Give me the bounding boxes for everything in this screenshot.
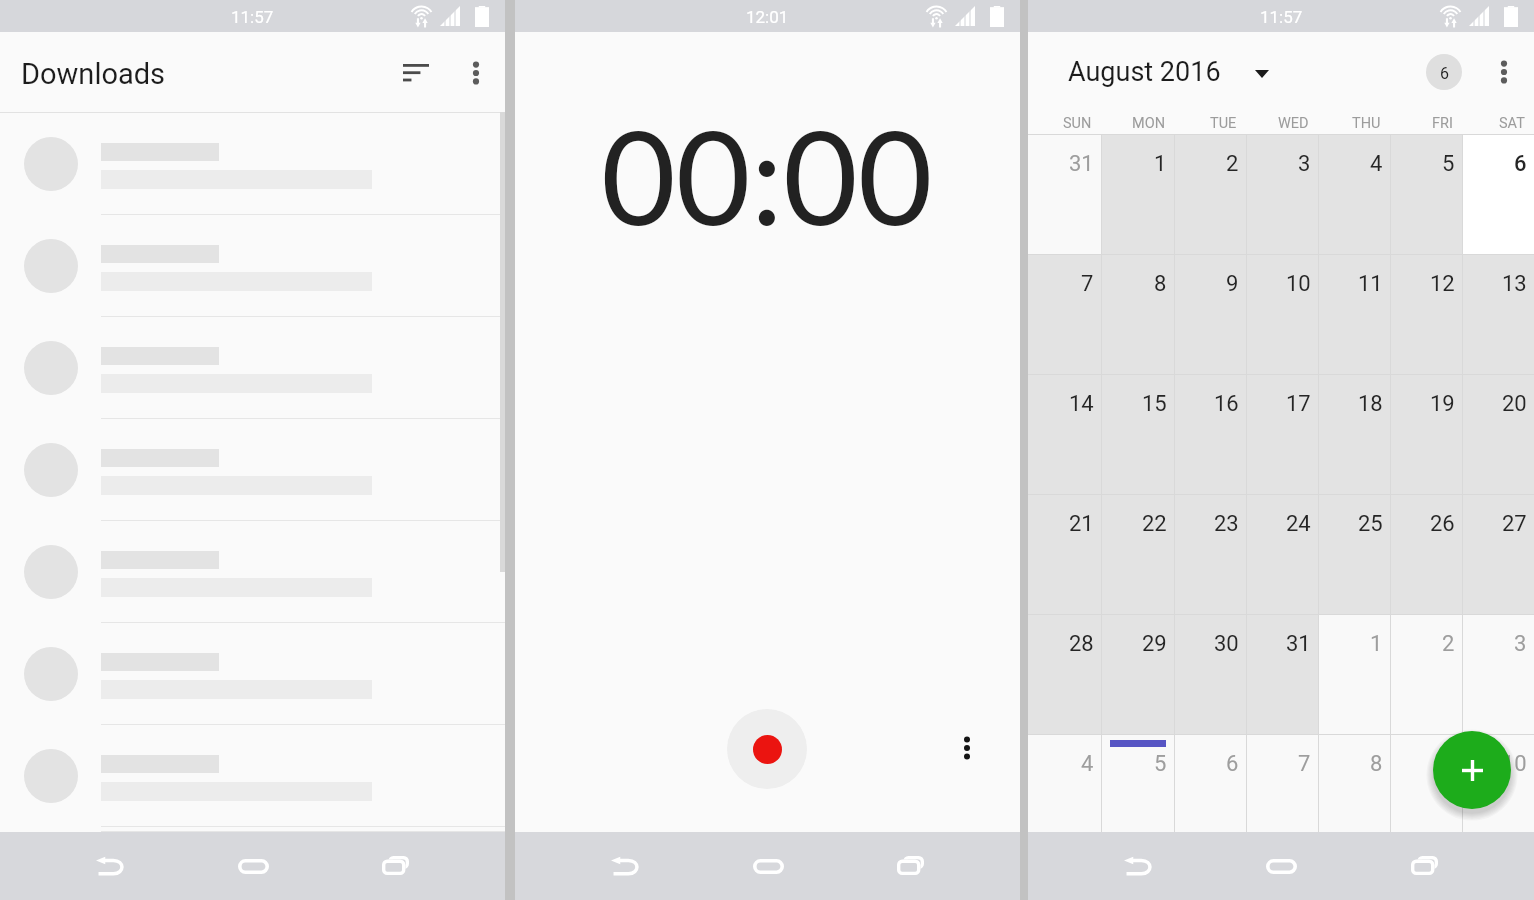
button[interactable]: More options	[943, 724, 991, 772]
button[interactable]	[0, 827, 505, 832]
button[interactable]: Back	[1105, 833, 1171, 899]
button[interactable]: Sort	[392, 49, 440, 97]
staticText: 29	[1142, 631, 1167, 657]
button[interactable]: 5	[1101, 734, 1174, 832]
staticText: 3	[1298, 151, 1311, 177]
button[interactable]: Recent apps	[362, 833, 428, 899]
button[interactable]: 20	[1462, 374, 1534, 494]
staticText: Downloads	[21, 57, 166, 91]
staticText: 10	[1502, 751, 1527, 777]
button[interactable]: 17	[1246, 374, 1318, 494]
button[interactable]: 7	[1246, 734, 1318, 832]
staticText: 31	[1069, 151, 1094, 177]
button[interactable]: 22	[1101, 494, 1174, 614]
button[interactable]	[0, 521, 505, 623]
staticText: 00:00	[601, 98, 933, 253]
button[interactable]: 2	[1174, 134, 1246, 254]
button[interactable]: 18	[1318, 374, 1390, 494]
staticText: 7	[1298, 751, 1311, 777]
button[interactable]	[0, 317, 505, 419]
staticText: 3	[1514, 631, 1527, 657]
button[interactable]: 3	[1246, 134, 1318, 254]
button[interactable]: More options	[1480, 48, 1528, 96]
staticText: 10	[1286, 271, 1311, 297]
staticText: 1	[1370, 631, 1383, 657]
staticText: 6	[1440, 64, 1449, 83]
button[interactable]: 12	[1390, 254, 1462, 374]
button[interactable]: 26	[1390, 494, 1462, 614]
button[interactable]: Create event	[1433, 731, 1511, 809]
button[interactable]: 28	[1028, 614, 1101, 734]
button[interactable]	[0, 419, 505, 521]
staticText: 13	[1502, 271, 1527, 297]
button[interactable]: 19	[1390, 374, 1462, 494]
button[interactable]: Home	[1248, 833, 1314, 899]
button[interactable]: 2	[1390, 614, 1462, 734]
button[interactable]: 10	[1246, 254, 1318, 374]
button[interactable]: 6	[1174, 734, 1246, 832]
button[interactable]: 15	[1101, 374, 1174, 494]
button[interactable]: 4	[1028, 734, 1101, 832]
button[interactable]: Record	[727, 709, 807, 789]
staticText: 11:57	[1260, 7, 1303, 27]
staticText: 30	[1214, 631, 1239, 657]
button[interactable]: 29	[1101, 614, 1174, 734]
button[interactable]: 8	[1101, 254, 1174, 374]
button[interactable]: 11	[1318, 254, 1390, 374]
staticText: 19	[1430, 391, 1455, 417]
button[interactable]: 5	[1390, 134, 1462, 254]
button[interactable]: 25	[1318, 494, 1390, 614]
button[interactable]: 16	[1174, 374, 1246, 494]
button[interactable]: Back	[77, 833, 143, 899]
staticText: 18	[1358, 391, 1383, 417]
button[interactable]	[0, 623, 505, 725]
staticText: 9	[1226, 271, 1239, 297]
button[interactable]: 1	[1318, 614, 1390, 734]
button[interactable]: August 2016	[1056, 48, 1281, 96]
button[interactable]: 30	[1174, 614, 1246, 734]
staticText: 7	[1081, 271, 1094, 297]
button[interactable]: 13	[1462, 254, 1534, 374]
staticText: 12:01	[746, 7, 789, 27]
staticText: SAT	[1499, 115, 1525, 132]
staticText: 1	[1154, 151, 1167, 177]
button[interactable]: Recent apps	[877, 833, 943, 899]
staticText: 4	[1081, 751, 1094, 777]
button[interactable]: 27	[1462, 494, 1534, 614]
button[interactable]: Recent apps	[1391, 833, 1457, 899]
staticText: 15	[1142, 391, 1167, 417]
button[interactable]: Home	[220, 833, 286, 899]
button[interactable]: Go to today	[1420, 48, 1468, 96]
button[interactable]: 1	[1101, 134, 1174, 254]
button[interactable]: 7	[1028, 254, 1101, 374]
staticText: 16	[1214, 391, 1239, 417]
button[interactable]: 6	[1462, 134, 1534, 254]
staticText: 11:57	[231, 7, 274, 27]
button[interactable]: More options	[452, 49, 500, 97]
staticText: 6	[1514, 151, 1527, 177]
staticText: 2	[1442, 631, 1455, 657]
button[interactable]: 4	[1318, 134, 1390, 254]
button[interactable]: 23	[1174, 494, 1246, 614]
button[interactable]: 31	[1028, 134, 1101, 254]
button[interactable]: 9	[1390, 734, 1462, 832]
staticText: 22	[1142, 511, 1167, 537]
button[interactable]: Home	[735, 833, 801, 899]
button[interactable]: 24	[1246, 494, 1318, 614]
button[interactable]	[0, 113, 505, 215]
button[interactable]: 10	[1462, 734, 1534, 832]
staticText: 8	[1370, 751, 1383, 777]
staticText: 17	[1286, 391, 1311, 417]
button[interactable]: Back	[592, 833, 658, 899]
button[interactable]: 14	[1028, 374, 1101, 494]
button[interactable]: 3	[1462, 614, 1534, 734]
staticText: 6	[1226, 751, 1239, 777]
button[interactable]: 9	[1174, 254, 1246, 374]
staticText: 8	[1154, 271, 1167, 297]
button[interactable]	[0, 725, 505, 827]
button[interactable]: 8	[1318, 734, 1390, 832]
staticText: TUE	[1210, 115, 1237, 132]
button[interactable]: 31	[1246, 614, 1318, 734]
button[interactable]	[0, 215, 505, 317]
button[interactable]: 21	[1028, 494, 1101, 614]
